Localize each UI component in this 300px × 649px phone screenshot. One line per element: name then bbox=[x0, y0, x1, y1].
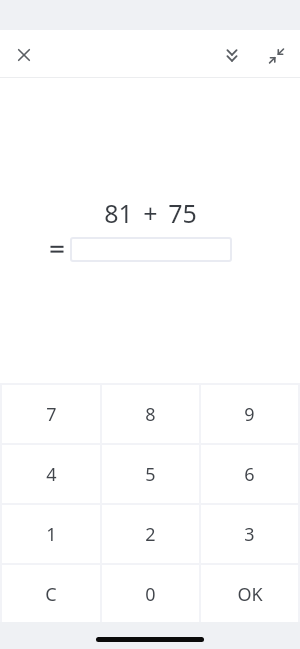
button[interactable] bbox=[258, 37, 294, 73]
staticText: + bbox=[143, 196, 158, 230]
button[interactable]: 8 bbox=[102, 385, 199, 443]
button[interactable]: 5 bbox=[102, 445, 199, 503]
button[interactable]: 6 bbox=[201, 445, 298, 503]
button[interactable]: 1 bbox=[2, 505, 100, 563]
button[interactable]: OK bbox=[201, 565, 298, 623]
button[interactable]: 7 bbox=[2, 385, 100, 443]
button[interactable]: 9 bbox=[201, 385, 298, 443]
button[interactable]: 0 bbox=[102, 565, 199, 623]
staticText: 1 bbox=[46, 522, 57, 547]
staticText: 75 bbox=[168, 196, 197, 230]
staticText: 9 bbox=[244, 402, 255, 427]
staticText: 5 bbox=[145, 462, 156, 487]
staticText: 0 bbox=[145, 582, 156, 607]
button[interactable]: 2 bbox=[102, 505, 199, 563]
button[interactable]: C bbox=[2, 565, 100, 623]
staticText: C bbox=[45, 582, 57, 607]
staticText: 3 bbox=[244, 522, 255, 547]
staticText: OK bbox=[237, 582, 263, 607]
button[interactable]: 3 bbox=[201, 505, 298, 563]
button[interactable]: 4 bbox=[2, 445, 100, 503]
staticText: 2 bbox=[145, 522, 156, 547]
button[interactable] bbox=[70, 237, 232, 262]
button[interactable] bbox=[214, 37, 250, 73]
staticText: 8 bbox=[145, 402, 156, 427]
staticText: 4 bbox=[46, 462, 57, 487]
staticText: 7 bbox=[46, 402, 57, 427]
staticText: 6 bbox=[244, 462, 255, 487]
staticText: 81 bbox=[104, 196, 133, 230]
button[interactable] bbox=[6, 37, 42, 73]
